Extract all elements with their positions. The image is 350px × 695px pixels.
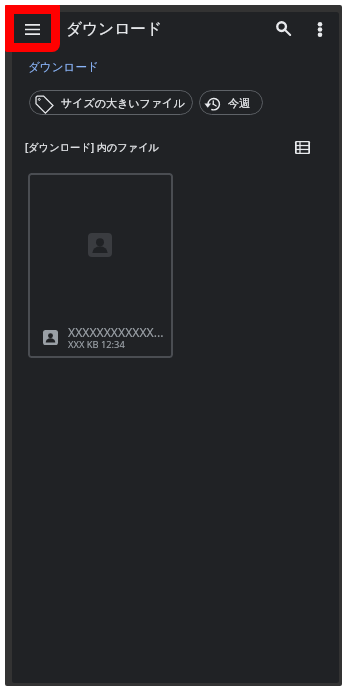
staticText: [ダウンロード] 内のファイル <box>25 140 159 154</box>
staticText: XXXXXXXXXXXX... <box>68 324 164 341</box>
button[interactable]: サイズの大きいファイル <box>29 90 193 115</box>
button[interactable]: Search <box>271 16 295 40</box>
button[interactable]: 今週 <box>199 90 263 115</box>
button[interactable]: Switch to list view <box>289 134 315 160</box>
button[interactable]: XXXXXXXXXXXX... <box>28 173 173 358</box>
button[interactable]: ダウンロード <box>28 60 99 75</box>
staticText: 今週 <box>228 96 250 110</box>
button[interactable]: More options <box>308 17 332 41</box>
staticText: ダウンロード <box>66 19 162 39</box>
staticText: XXX KB 12:34 <box>68 338 125 351</box>
staticText: サイズの大きいファイル <box>61 96 185 110</box>
button[interactable]: Navigation menu <box>20 17 44 41</box>
